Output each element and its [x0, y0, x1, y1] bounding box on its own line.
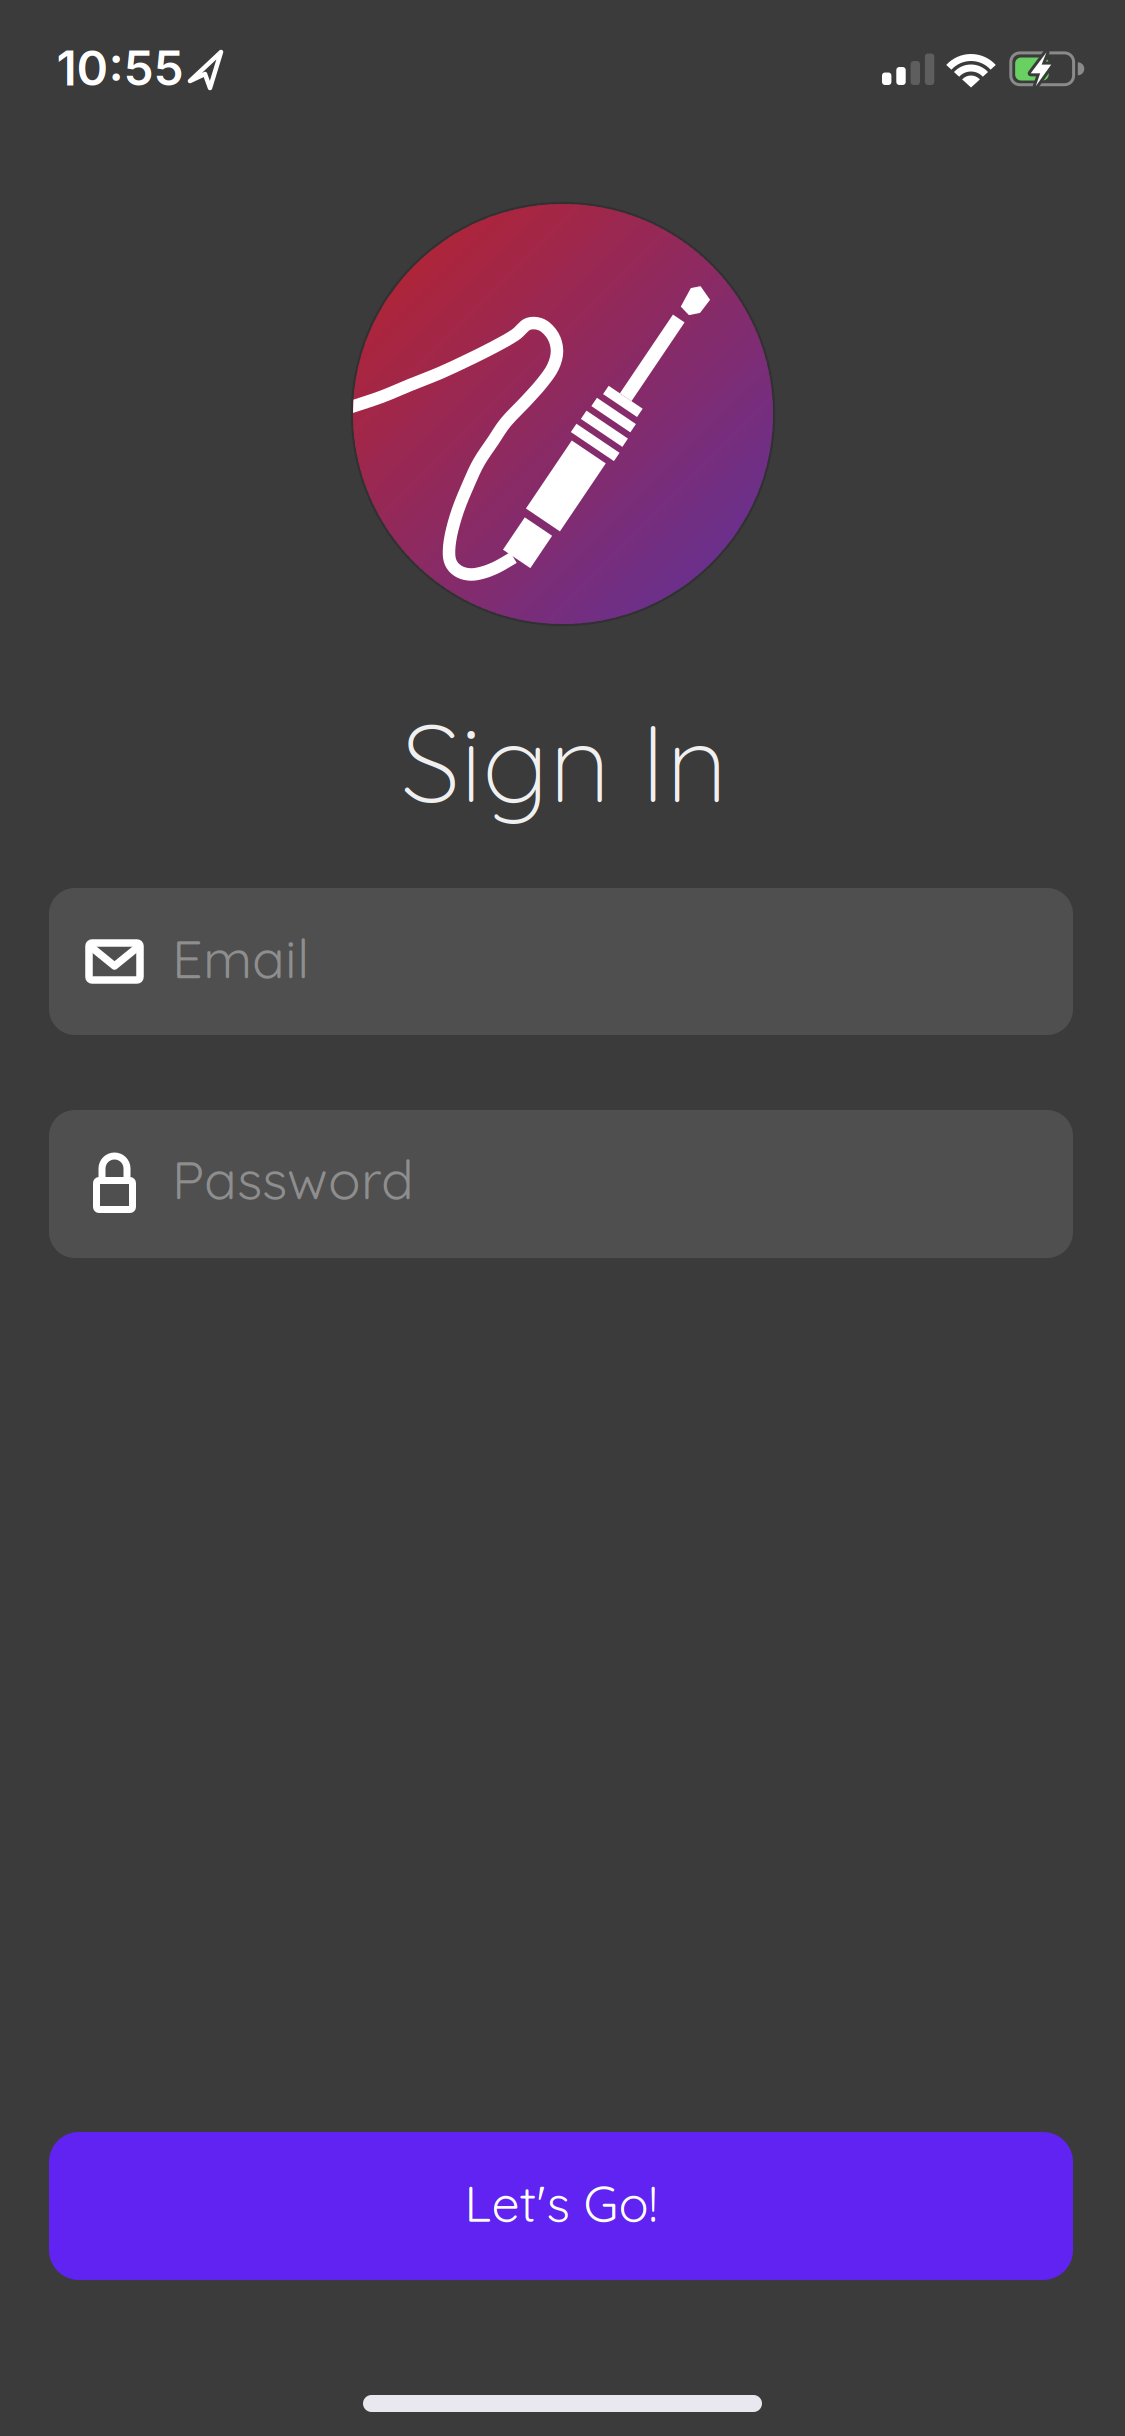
button[interactable]: Password [49, 1110, 1073, 1258]
staticText: Sign In [401, 694, 728, 829]
button[interactable]: Let's Go! [49, 2132, 1073, 2280]
staticText: Email [172, 924, 309, 992]
staticText: Password [172, 1145, 414, 1213]
staticText: Let's Go! [464, 2172, 657, 2234]
button[interactable]: Email [49, 888, 1073, 1035]
staticText: 10:55 [56, 39, 183, 97]
